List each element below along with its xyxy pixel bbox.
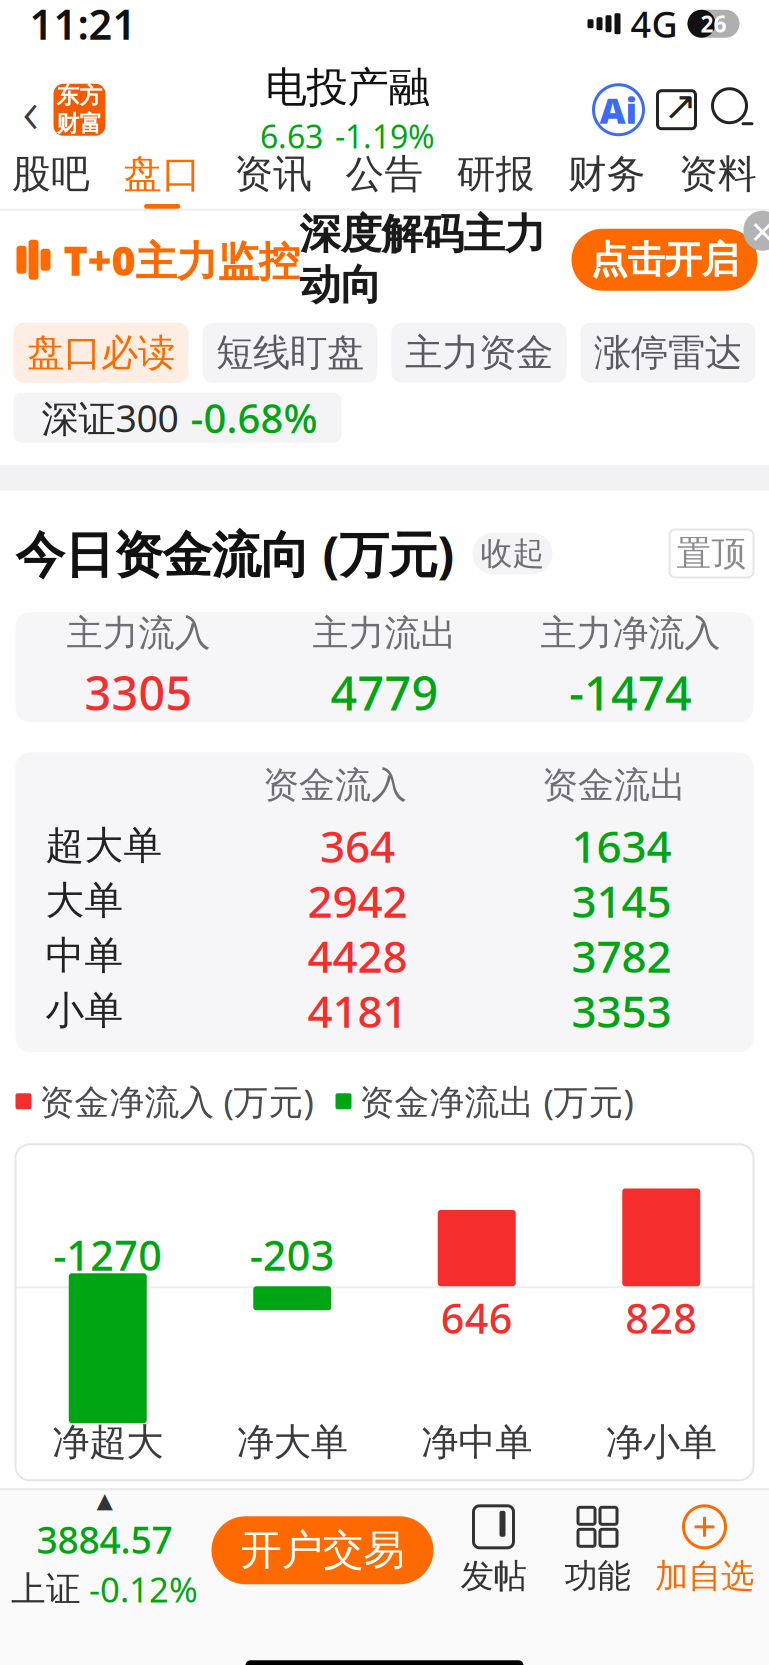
staticText: 4428 bbox=[307, 926, 407, 985]
staticText: -1.19% bbox=[335, 115, 435, 157]
button[interactable]: Search bbox=[705, 82, 761, 138]
staticText: 置顶 bbox=[676, 532, 746, 575]
staticText: 2942 bbox=[307, 871, 407, 930]
staticText: 电投产融 bbox=[265, 62, 429, 113]
staticText: 资金净流入 (万元) bbox=[39, 1078, 313, 1124]
staticText: 开户交易 bbox=[240, 1525, 404, 1576]
staticText: 发帖 bbox=[460, 1556, 526, 1597]
staticText: 26 bbox=[700, 9, 726, 39]
staticText: 东方 bbox=[56, 82, 102, 110]
staticText: × bbox=[751, 204, 769, 257]
button[interactable]: 盘口必读 bbox=[13, 323, 188, 383]
staticText: 646 bbox=[441, 1290, 513, 1345]
staticText: 大单 bbox=[45, 877, 123, 924]
staticText: 中单 bbox=[45, 932, 123, 979]
button[interactable]: AI assistant bbox=[589, 81, 647, 139]
button[interactable]: 涨停雷达 bbox=[580, 323, 755, 383]
button[interactable]: 研报 bbox=[440, 149, 551, 211]
staticText: 3884.57 bbox=[36, 1515, 172, 1564]
staticText: 3305 bbox=[84, 661, 192, 723]
staticText: 深度解码主力动向 bbox=[299, 209, 545, 310]
staticText: 盘口 bbox=[123, 150, 201, 198]
staticText: 主力净流入 bbox=[540, 611, 720, 655]
staticText: ‹ bbox=[22, 69, 38, 150]
staticText: 3782 bbox=[571, 926, 671, 985]
button[interactable]: 盘口 bbox=[107, 149, 218, 211]
staticText: 主力流出 bbox=[312, 611, 456, 655]
staticText: 超大单 bbox=[45, 822, 162, 869]
staticText: 点击开启 bbox=[590, 237, 738, 283]
button[interactable]: 主力资金 bbox=[391, 323, 566, 383]
staticText: 今日资金流向 (万元) bbox=[15, 521, 454, 586]
staticText: 上证 bbox=[11, 1568, 81, 1610]
button[interactable]: 财务 bbox=[551, 149, 662, 211]
staticText: 资金流出 bbox=[542, 763, 686, 807]
button[interactable]: ▲ bbox=[9, 1488, 199, 1612]
staticText: -203 bbox=[250, 1227, 335, 1282]
button[interactable]: 资料 bbox=[662, 149, 769, 211]
staticText: 涨停雷达 bbox=[594, 330, 742, 376]
staticText: -1474 bbox=[569, 661, 692, 723]
staticText: 4G bbox=[630, 0, 677, 48]
staticText: 364 bbox=[320, 816, 395, 875]
button[interactable]: Back bbox=[7, 80, 53, 140]
button[interactable]: 点击开启 bbox=[571, 229, 757, 291]
staticText: 功能 bbox=[564, 1556, 630, 1597]
staticText: 资金净流出 (万元) bbox=[359, 1078, 633, 1124]
staticText: 主力流入 bbox=[66, 611, 210, 655]
staticText: 财富 bbox=[56, 110, 102, 137]
staticText: 828 bbox=[625, 1290, 697, 1345]
staticText: 主力资金 bbox=[405, 330, 553, 376]
staticText: -1270 bbox=[53, 1227, 162, 1282]
button[interactable]: East Money home bbox=[53, 84, 105, 136]
staticText: 资金流入 bbox=[263, 763, 407, 807]
staticText: 4779 bbox=[330, 661, 438, 723]
staticText: 3145 bbox=[571, 871, 671, 930]
button[interactable]: 功能 bbox=[545, 1504, 649, 1597]
staticText: 盘口必读 bbox=[27, 330, 175, 376]
button[interactable]: Close ad bbox=[743, 211, 769, 251]
button[interactable]: 公告 bbox=[329, 149, 440, 211]
staticText: 净小单 bbox=[606, 1419, 717, 1465]
staticText: Ai bbox=[599, 86, 637, 134]
staticText: 公告 bbox=[345, 150, 423, 198]
button[interactable]: 置顶 bbox=[669, 529, 753, 577]
staticText: 财务 bbox=[568, 150, 646, 198]
staticText: ↗ bbox=[663, 83, 697, 128]
staticText: 4181 bbox=[307, 981, 407, 1040]
staticText: 加自选 bbox=[655, 1556, 754, 1597]
staticText: 资讯 bbox=[234, 150, 312, 198]
staticText: 净超大 bbox=[52, 1419, 163, 1465]
staticText: T+0主力监控 bbox=[63, 232, 299, 287]
button[interactable]: 开户交易 bbox=[211, 1516, 433, 1584]
staticText: 资料 bbox=[679, 150, 757, 198]
staticText: 3353 bbox=[571, 981, 671, 1040]
staticText: 短线盯盘 bbox=[216, 330, 364, 376]
staticText: 11:21 bbox=[29, 0, 136, 51]
button[interactable]: 加自选 bbox=[649, 1504, 759, 1597]
staticText: ▲ bbox=[96, 1488, 112, 1513]
staticText: 净中单 bbox=[421, 1419, 532, 1465]
staticText: -0.68% bbox=[190, 391, 317, 444]
button[interactable]: 股吧 bbox=[0, 149, 107, 211]
staticText: 1634 bbox=[571, 816, 671, 875]
staticText: 股吧 bbox=[12, 150, 90, 198]
button[interactable]: 收起 bbox=[472, 532, 552, 574]
staticText: 深证300 bbox=[41, 393, 178, 442]
button[interactable]: Share bbox=[647, 81, 705, 139]
staticText: 小单 bbox=[45, 987, 123, 1034]
button[interactable]: 资讯 bbox=[218, 149, 329, 211]
button[interactable]: 发帖 bbox=[441, 1504, 545, 1597]
staticText: -0.12% bbox=[89, 1566, 198, 1612]
staticText: 收起 bbox=[480, 534, 544, 573]
staticText: 6.63 bbox=[260, 115, 323, 157]
staticText: 净大单 bbox=[237, 1419, 348, 1465]
staticText: 研报 bbox=[457, 150, 535, 198]
button[interactable]: 短线盯盘 bbox=[202, 323, 377, 383]
